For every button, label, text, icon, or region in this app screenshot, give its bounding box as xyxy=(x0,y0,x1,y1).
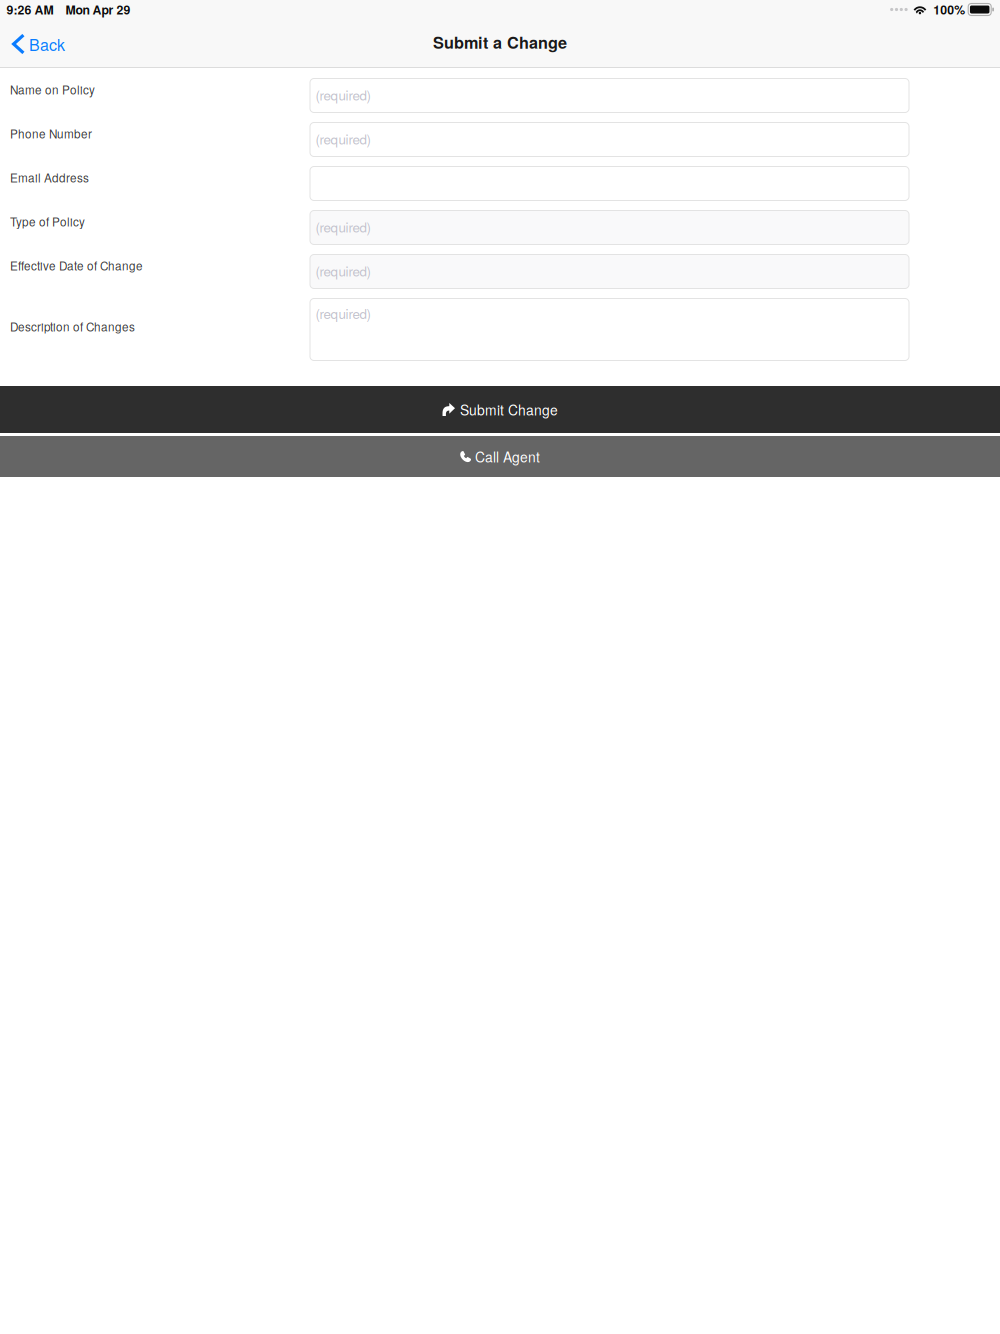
staticText: Submit Change xyxy=(460,400,558,419)
staticText: Name on Policy xyxy=(10,81,95,98)
staticText: Submit a Change xyxy=(433,30,567,54)
button[interactable]: Back xyxy=(0,19,79,67)
staticText: Description of Changes xyxy=(10,318,135,335)
staticText: Effective Date of Change xyxy=(10,257,143,274)
staticText: Email Address xyxy=(10,169,89,186)
staticText: Call Agent xyxy=(475,447,540,466)
staticText: Phone Number xyxy=(10,125,92,142)
staticText: (required) xyxy=(315,217,370,236)
staticText: (required) xyxy=(315,261,370,280)
button[interactable]: Call Agent xyxy=(0,436,1000,477)
staticText: 100% xyxy=(933,1,965,18)
staticText: Back xyxy=(29,32,65,55)
button[interactable]: Submit Change xyxy=(0,386,1000,433)
staticText: Mon Apr 29 xyxy=(65,1,130,18)
staticText: (required) xyxy=(315,85,370,104)
staticText: (required) xyxy=(315,303,370,323)
staticText: (required) xyxy=(315,129,370,148)
staticText: 9:26 AM xyxy=(6,1,53,18)
staticText: Type of Policy xyxy=(10,213,85,230)
